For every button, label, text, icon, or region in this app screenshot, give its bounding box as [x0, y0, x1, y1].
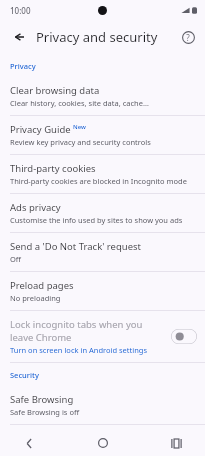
staticText: Clear history, cookies, site data, cache… [10, 98, 149, 108]
staticText: Send a 'Do Not Track' request [10, 240, 141, 253]
button[interactable]: Lock incognito tabs when you leave Chrom… [0, 311, 205, 362]
button[interactable]: Preload pages [0, 272, 205, 310]
staticText: Customise the info used by sites to show… [10, 215, 183, 225]
button[interactable]: Help [176, 25, 200, 49]
staticText: Preload pages [10, 279, 74, 292]
staticText: Off [10, 254, 22, 264]
staticText: ? [186, 32, 190, 43]
staticText: Third-party cookies are blocked in Incog… [10, 176, 187, 186]
staticText: Turn on screen lock in Android settings [10, 345, 148, 355]
staticText: Ads privacy [10, 201, 61, 214]
staticText: Privacy [10, 61, 36, 71]
button[interactable]: Back [18, 432, 40, 454]
staticText: No preloading [10, 293, 61, 303]
staticText: Security [10, 370, 39, 380]
button[interactable]: Safe Browsing [0, 386, 205, 424]
staticText: Safe Browsing is off [10, 407, 80, 417]
staticText: Third-party cookies [10, 162, 96, 175]
staticText: Privacy and security [36, 28, 158, 46]
staticText: Privacy Guide [10, 123, 71, 136]
button[interactable]: Privacy Guide [0, 116, 205, 154]
button[interactable]: Third-party cookies [0, 155, 205, 193]
staticText: Review key privacy and security controls [10, 137, 151, 147]
staticText: Clear browsing data [10, 84, 100, 97]
button[interactable]: Home [92, 432, 114, 454]
staticText: 10:00 [10, 5, 31, 16]
staticText: Safe Browsing [10, 393, 74, 406]
button[interactable]: Send a 'Do Not Track' request [0, 233, 205, 271]
staticText: New [73, 123, 86, 131]
button[interactable]: Ads privacy [0, 194, 205, 232]
button[interactable]: Back [6, 24, 32, 50]
button[interactable]: Toggle Lock incognito tabs when you leav… [171, 329, 197, 344]
button[interactable]: Recent apps [165, 432, 187, 454]
staticText: Lock incognito tabs when you leave Chrom… [10, 318, 165, 344]
button[interactable]: Clear browsing data [0, 77, 205, 115]
